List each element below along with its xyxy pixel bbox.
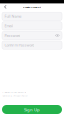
staticText: Service & Privacy Policy [2,94,27,97]
staticText: Full Name [4,14,21,19]
button[interactable]: Sign Up [2,105,62,114]
button[interactable]: Email [2,22,62,30]
staticText: Sign Up [24,107,40,112]
staticText: Email [4,23,13,28]
staticText: Create Account [23,5,41,9]
staticText: Password [4,33,20,38]
button[interactable]: Back [2,4,9,10]
button[interactable]: Confirm Password [2,41,62,49]
staticText: I agree to the Terms of [2,91,26,94]
button[interactable]: Password [2,31,62,40]
button[interactable]: Full Name [2,12,62,20]
staticText: Confirm Password [4,43,34,48]
